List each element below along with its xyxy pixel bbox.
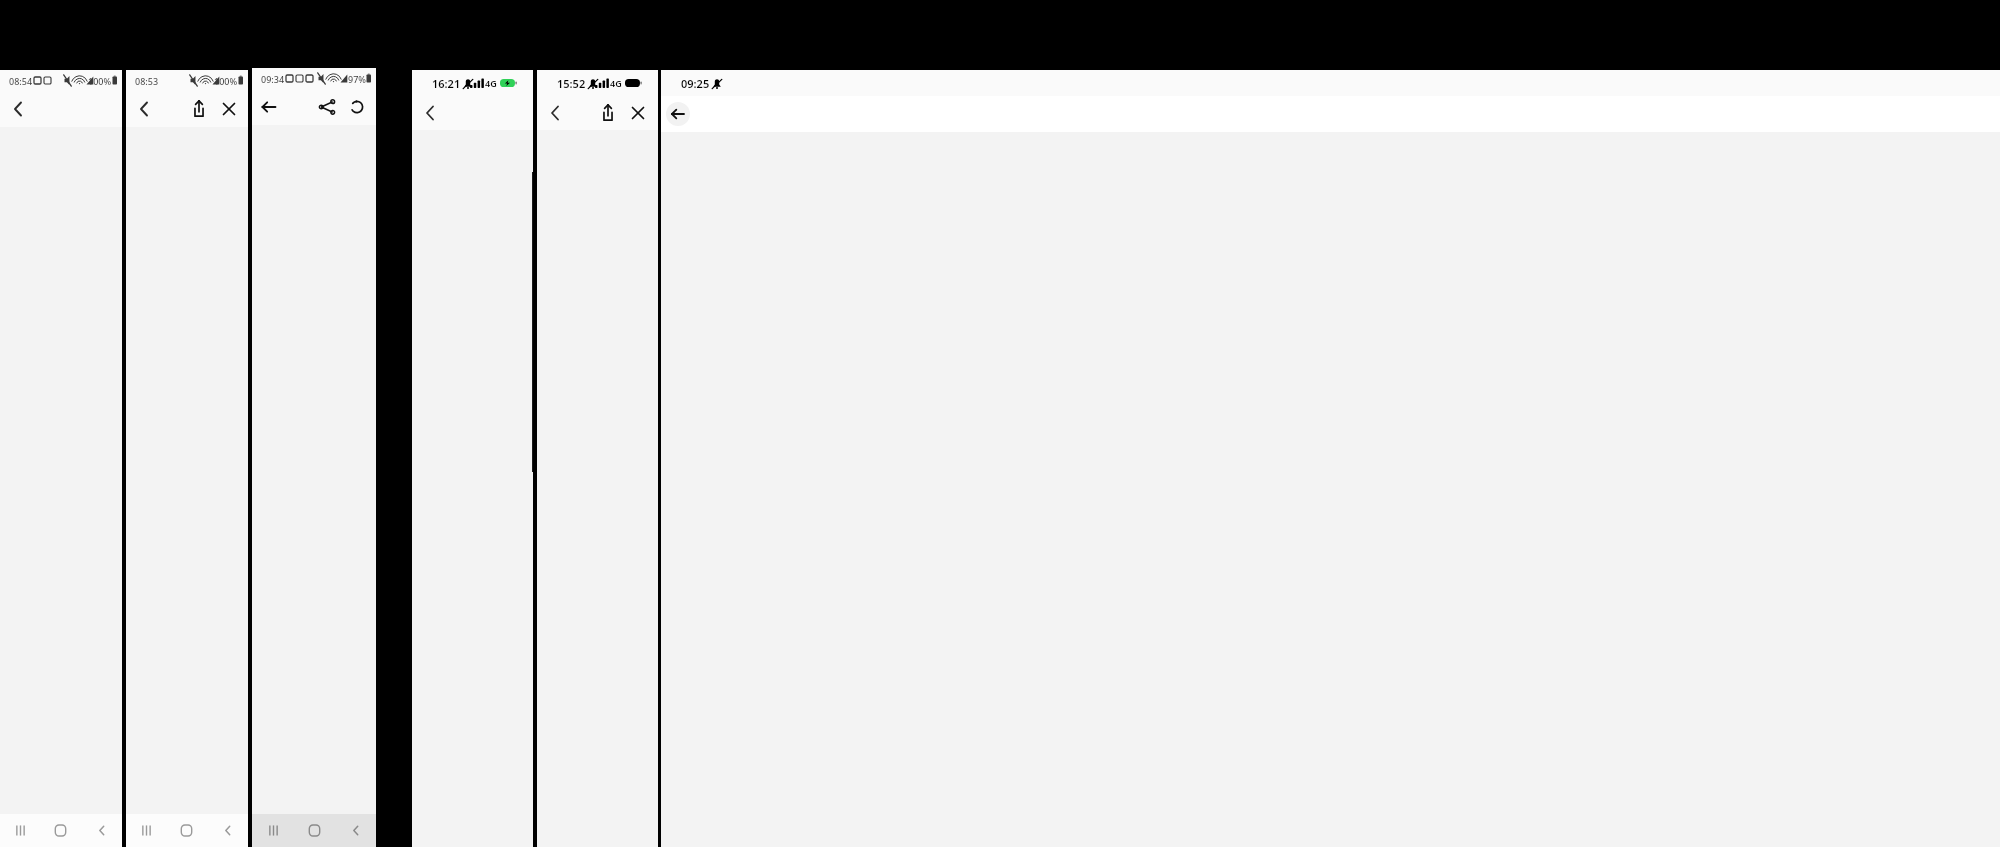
staticText: 97%	[348, 73, 366, 85]
button[interactable]: Back	[81, 814, 122, 847]
button[interactable]: Refresh	[342, 92, 372, 122]
button[interactable]: Share	[184, 94, 214, 124]
button[interactable]: Close	[623, 98, 653, 128]
button[interactable]: Back	[666, 102, 690, 126]
staticText: 09:25	[681, 76, 710, 91]
button[interactable]: Recent apps	[126, 814, 166, 847]
button[interactable]: Back	[254, 92, 284, 122]
button[interactable]: Home	[166, 814, 207, 847]
button[interactable]: Close	[214, 94, 244, 124]
button[interactable]: Back	[2, 94, 32, 124]
staticText: 16:21	[432, 76, 461, 91]
staticText: 100%	[88, 75, 112, 87]
button[interactable]: Back	[540, 98, 570, 128]
button[interactable]: Back	[207, 814, 248, 847]
button[interactable]: Home	[40, 814, 81, 847]
button[interactable]: Share	[312, 92, 342, 122]
staticText: 09:34	[261, 73, 285, 85]
button[interactable]: Recent apps	[0, 814, 40, 847]
staticText: 08:54	[9, 75, 33, 87]
button[interactable]: Back	[415, 98, 445, 128]
button[interactable]: Share	[593, 98, 623, 128]
staticText: 4G	[610, 77, 622, 89]
staticText: 15:52	[557, 76, 586, 91]
staticText: Android	[160, 46, 244, 75]
staticText: iOS	[572, 46, 607, 75]
staticText: 100%	[214, 75, 238, 87]
button[interactable]: Home	[294, 814, 335, 847]
staticText: 08:53	[135, 75, 159, 87]
button[interactable]: Back	[128, 94, 158, 124]
button[interactable]: Back	[335, 814, 376, 847]
staticText: 4G	[485, 77, 497, 89]
button[interactable]: Recent apps	[252, 814, 294, 847]
